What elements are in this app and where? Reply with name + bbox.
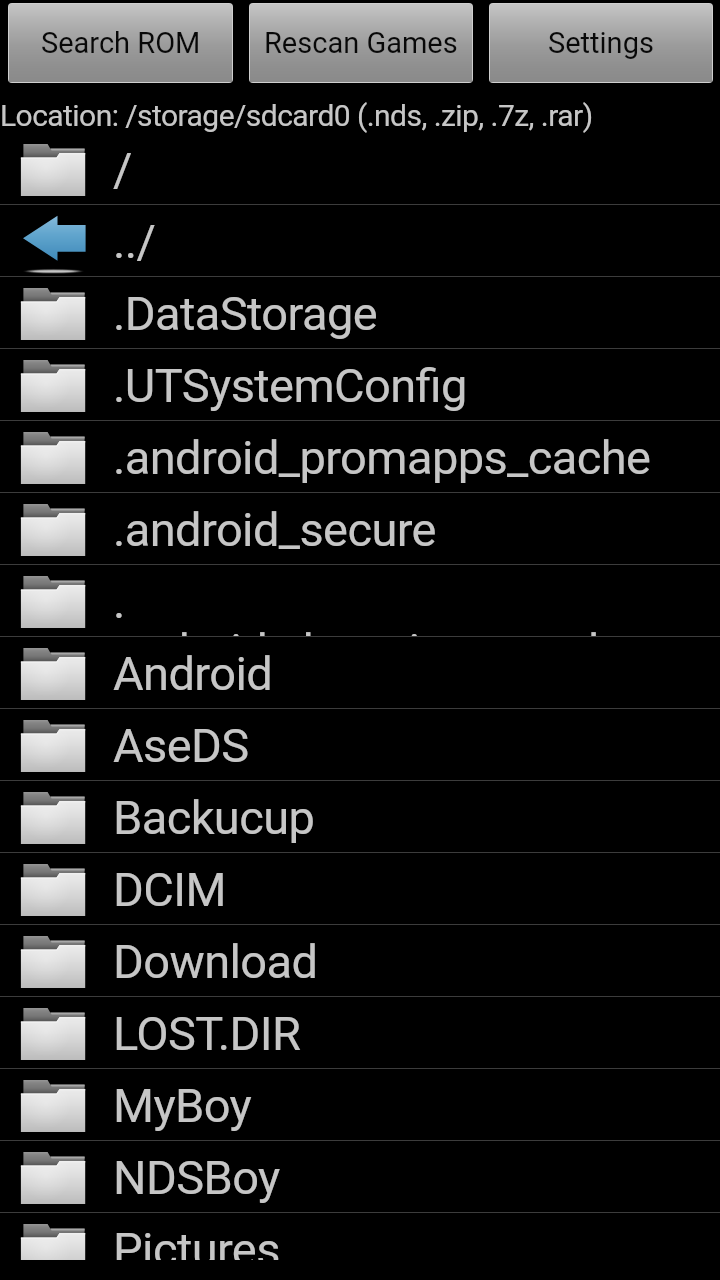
- staticText: .UTSystemConfig: [113, 358, 467, 413]
- button[interactable]: Download: [0, 925, 720, 997]
- staticText: Search ROM: [41, 26, 201, 60]
- button[interactable]: AseDS: [0, 709, 720, 781]
- button[interactable]: ../: [0, 205, 720, 277]
- staticText: AseDS: [113, 718, 249, 773]
- button[interactable]: Pictures: [0, 1213, 720, 1260]
- staticText: Pictures: [113, 1222, 280, 1260]
- staticText: Rescan Games: [264, 26, 458, 60]
- staticText: .: [113, 574, 125, 629]
- staticText: NDSBoy: [113, 1150, 280, 1205]
- staticText: Location: /storage/sdcard0 (.nds, .zip, …: [0, 98, 593, 133]
- staticText: android_tlsessions_cache: [113, 623, 638, 637]
- staticText: Backucup: [113, 790, 315, 845]
- button[interactable]: /: [0, 133, 720, 205]
- staticText: Download: [113, 934, 318, 989]
- staticText: ../: [113, 214, 156, 269]
- staticText: DCIM: [113, 862, 226, 917]
- staticText: .android_secure: [113, 502, 436, 557]
- button[interactable]: Backucup: [0, 781, 720, 853]
- button[interactable]: DCIM: [0, 853, 720, 925]
- button[interactable]: MyBoy: [0, 1069, 720, 1141]
- staticText: /: [113, 142, 132, 197]
- button[interactable]: NDSBoy: [0, 1141, 720, 1213]
- button[interactable]: .android_promapps_cache: [0, 421, 720, 493]
- button[interactable]: Settings: [490, 4, 712, 82]
- button[interactable]: LOST.DIR: [0, 997, 720, 1069]
- button[interactable]: Search ROM: [9, 4, 232, 82]
- staticText: .DataStorage: [113, 286, 378, 341]
- staticText: MyBoy: [113, 1078, 252, 1133]
- staticText: .android_promapps_cache: [113, 430, 651, 485]
- staticText: LOST.DIR: [113, 1006, 301, 1061]
- staticText: Android: [113, 646, 273, 701]
- button[interactable]: .UTSystemConfig: [0, 349, 720, 421]
- button[interactable]: .android_secure: [0, 493, 720, 565]
- button[interactable]: Rescan Games: [250, 4, 472, 82]
- staticText: Settings: [548, 26, 654, 60]
- button[interactable]: .DataStorage: [0, 277, 720, 349]
- button[interactable]: Android: [0, 637, 720, 709]
- button[interactable]: .: [0, 565, 720, 637]
